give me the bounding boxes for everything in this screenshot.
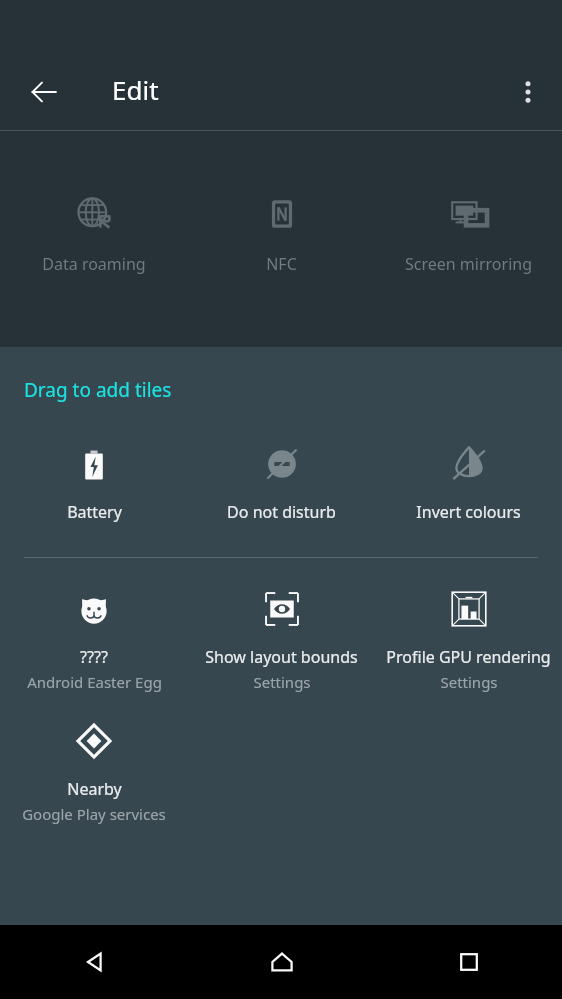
button[interactable]: Battery — [0, 443, 188, 523]
button[interactable]: Recent apps — [375, 925, 562, 999]
staticText: Android Easter Egg — [27, 672, 162, 692]
staticText: Screen mirroring — [405, 253, 532, 275]
button[interactable]: NFC — [188, 193, 375, 275]
staticText: Do not disturb — [227, 501, 336, 523]
staticText: Settings — [440, 672, 498, 692]
button[interactable]: Nearby — [0, 720, 188, 824]
button[interactable]: Profile GPU rendering — [375, 588, 562, 692]
staticText: Drag to add tiles — [24, 377, 172, 403]
staticText: Nearby — [67, 778, 122, 800]
staticText: Invert colours — [416, 501, 521, 523]
button[interactable]: Data roaming — [0, 193, 188, 275]
button[interactable]: Do not disturb — [188, 443, 375, 523]
button[interactable]: More options — [500, 64, 556, 120]
staticText: Battery — [67, 501, 122, 523]
button[interactable]: ???? — [0, 588, 188, 692]
staticText: Profile GPU rendering — [386, 646, 551, 668]
staticText: ???? — [80, 646, 108, 668]
button[interactable]: Home — [188, 925, 375, 999]
staticText: Data roaming — [42, 253, 146, 275]
staticText: Edit — [112, 72, 159, 107]
staticText: NFC — [266, 253, 297, 275]
button[interactable]: Back — [16, 64, 72, 120]
button[interactable]: Show layout bounds — [188, 588, 375, 692]
staticText: Google Play services — [22, 804, 166, 824]
staticText: Show layout bounds — [205, 646, 358, 668]
button[interactable]: Invert colours — [375, 443, 562, 523]
staticText: Settings — [253, 672, 311, 692]
button[interactable]: Screen mirroring — [375, 193, 562, 275]
button[interactable]: Back — [0, 925, 188, 999]
